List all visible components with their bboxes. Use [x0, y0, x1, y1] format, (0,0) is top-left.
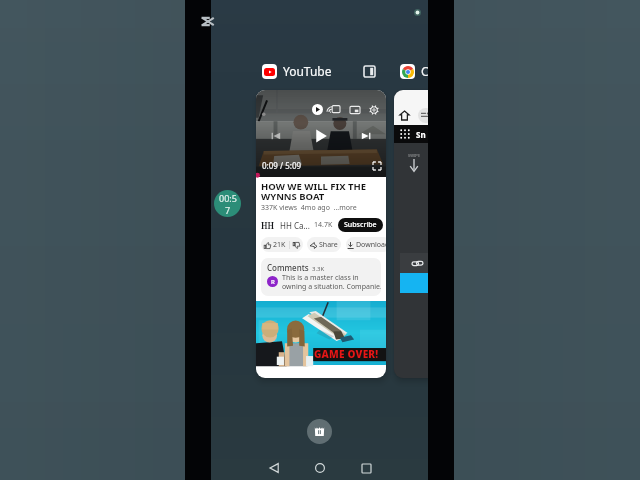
button[interactable]: Next video — [361, 131, 371, 141]
button[interactable]: Back — [263, 457, 285, 479]
button[interactable]: Split screen — [361, 63, 377, 79]
staticText: HOW WE WILL FIX THE — [261, 180, 367, 193]
button[interactable]: Autoplay — [256, 90, 386, 378]
button[interactable]: Miniplayer — [350, 105, 360, 115]
staticText: Download — [356, 240, 386, 250]
button[interactable]: Clear all — [307, 419, 332, 444]
staticText: 337K views 4mo ago ...more — [261, 203, 357, 213]
staticText: GAME OVER! — [314, 347, 379, 361]
staticText: SWIPE — [408, 153, 420, 158]
button[interactable]: Settings — [369, 105, 379, 115]
staticText: 00:5 — [219, 192, 237, 204]
staticText: WYNNS BOAT — [261, 190, 325, 203]
button[interactable]: Recent apps — [355, 457, 377, 479]
staticText: Sn — [416, 129, 426, 140]
button[interactable]: Autoplay — [312, 104, 323, 115]
staticText: R — [271, 278, 275, 286]
staticText: This is a master class in — [282, 273, 359, 283]
button[interactable]: Home — [309, 457, 331, 479]
button[interactable]: C — [400, 63, 428, 79]
staticText: Share — [319, 240, 338, 250]
staticText: YouTube — [283, 63, 332, 79]
button[interactable]: Download — [346, 237, 386, 252]
button[interactable]: Fullscreen — [373, 162, 381, 170]
staticText: C — [421, 63, 428, 79]
button[interactable]: Subscribe — [338, 218, 383, 232]
staticText: 21K — [273, 240, 286, 250]
staticText: 7 — [225, 204, 231, 216]
button[interactable]: Play — [314, 129, 328, 143]
staticText: owning a situation. Companie... — [282, 282, 381, 292]
button[interactable]: GAME OVER! — [256, 301, 386, 365]
button[interactable]: Cast — [330, 105, 340, 115]
button[interactable]: Comments — [261, 258, 381, 296]
staticText: 0:09 / 5:09 — [262, 160, 302, 171]
staticText: Subscribe — [344, 220, 377, 230]
button[interactable]: 21K — [261, 237, 303, 252]
button[interactable]: Share — [307, 237, 341, 252]
staticText: HH — [261, 220, 275, 231]
staticText: 14.7K — [314, 220, 333, 230]
staticText: HH Ca... — [280, 220, 310, 231]
button[interactable]: YouTube — [262, 63, 332, 79]
staticText: Comments — [267, 262, 309, 273]
staticText: 3.3K — [312, 265, 325, 273]
button[interactable]: Sn — [394, 90, 428, 378]
button[interactable]: Previous video — [271, 131, 281, 141]
